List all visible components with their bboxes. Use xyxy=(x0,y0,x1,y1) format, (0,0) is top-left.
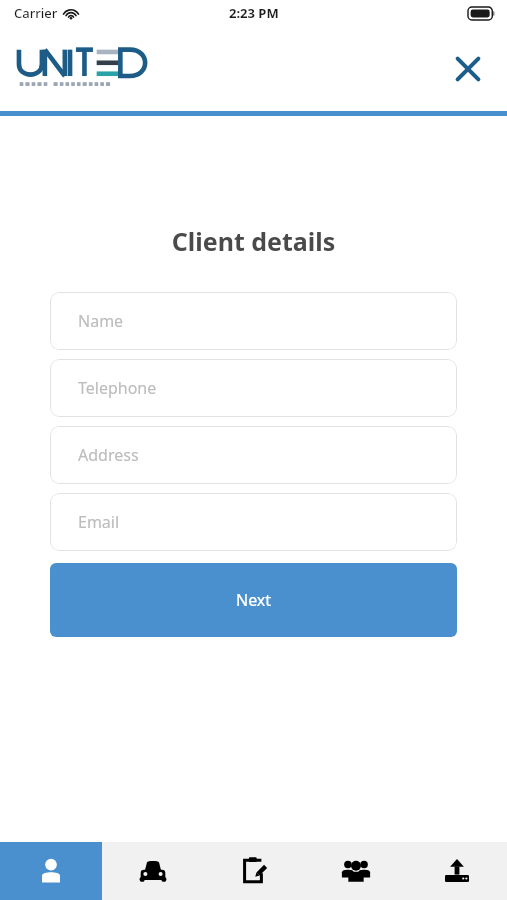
button[interactable]: Vehicle xyxy=(102,842,204,900)
button[interactable]: Name xyxy=(50,292,457,350)
button[interactable]: Address xyxy=(50,426,457,484)
button[interactable]: Passengers xyxy=(305,842,406,900)
button[interactable]: Next xyxy=(50,563,457,637)
staticText: Email xyxy=(78,511,120,533)
staticText: Address xyxy=(78,444,139,466)
button[interactable]: Telephone xyxy=(50,359,457,417)
staticText: 2:23 PM xyxy=(229,4,279,22)
button[interactable]: Upload xyxy=(406,842,507,900)
staticText: Client details xyxy=(0,224,507,258)
staticText: Carrier xyxy=(14,4,58,22)
staticText: Name xyxy=(78,310,124,332)
staticText: Telephone xyxy=(78,377,157,399)
button[interactable]: Forms xyxy=(204,842,305,900)
button[interactable]: Close xyxy=(445,46,491,92)
staticText: Next xyxy=(236,589,272,611)
button[interactable]: Client xyxy=(0,842,102,900)
button[interactable]: Email xyxy=(50,493,457,551)
